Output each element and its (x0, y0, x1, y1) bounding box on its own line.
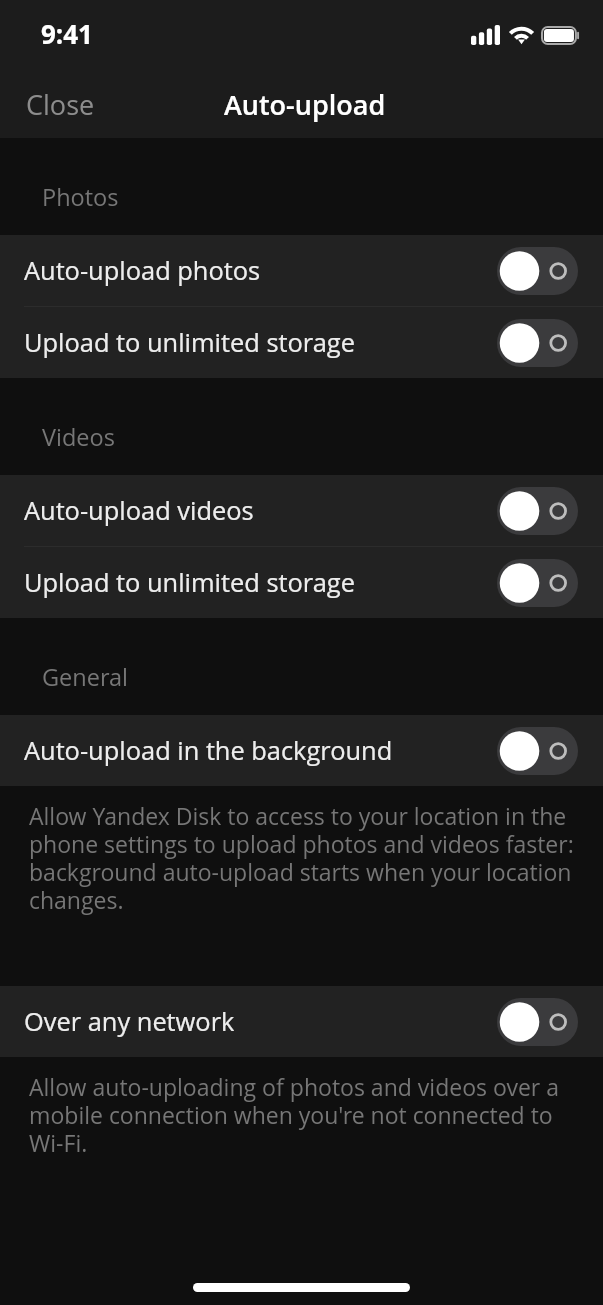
other: Cellular signal (471, 25, 500, 45)
button[interactable]: Upload to unlimited storage (0, 307, 603, 378)
button[interactable]: Close (0, 74, 113, 135)
other: Wi-Fi (508, 25, 535, 45)
button[interactable]: Toggle (497, 727, 578, 775)
staticText: Allow Yandex Disk to access to your loca… (29, 800, 591, 916)
staticText: Allow auto-uploading of photos and video… (29, 1071, 591, 1159)
staticText: Upload to unlimited storage (24, 565, 355, 600)
button[interactable]: Toggle (497, 998, 578, 1046)
button[interactable]: Toggle (497, 319, 578, 367)
button[interactable]: Auto-upload photos (0, 235, 603, 306)
staticText: General (42, 661, 129, 693)
staticText: Auto-upload videos (24, 493, 254, 528)
other: Battery (541, 26, 579, 45)
button[interactable]: Auto-upload videos (0, 475, 603, 546)
staticText: Auto-upload photos (24, 253, 261, 288)
button[interactable]: Toggle (497, 559, 578, 607)
button[interactable]: Toggle (497, 487, 578, 535)
staticText: Videos (42, 421, 115, 453)
button[interactable]: Auto-upload in the background (0, 715, 603, 786)
staticText: Auto-upload in the background (24, 733, 393, 768)
staticText: Over any network (24, 1004, 235, 1039)
button[interactable]: Toggle (497, 247, 578, 295)
button[interactable]: Upload to unlimited storage (0, 547, 603, 618)
button[interactable]: Over any network (0, 986, 603, 1057)
staticText: Auto-upload (224, 86, 386, 123)
staticText: Close (26, 86, 95, 123)
staticText: Upload to unlimited storage (24, 325, 355, 360)
staticText: Photos (42, 181, 119, 213)
staticText: 9:41 (41, 16, 93, 51)
